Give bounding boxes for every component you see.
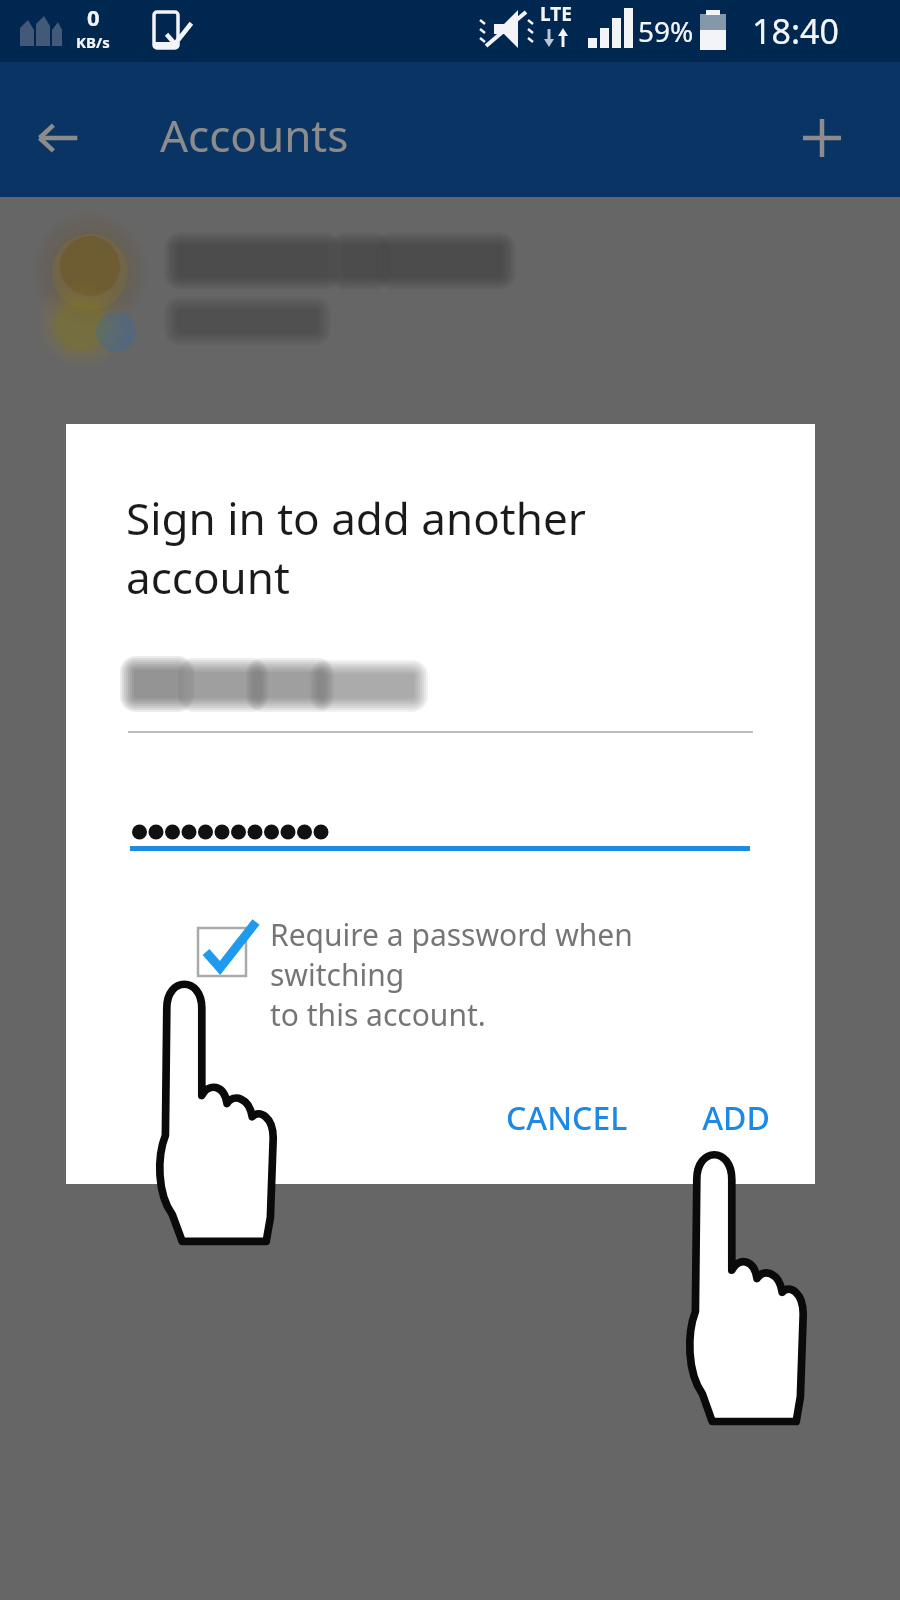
staticText: Sign in to add another account [126, 488, 746, 606]
staticText: CANCEL [506, 1096, 628, 1140]
staticText: Require a password when switching to thi… [270, 914, 766, 1035]
staticText: 18:40 [752, 8, 839, 54]
staticText: KB/s [76, 32, 110, 52]
staticText: Accounts [160, 105, 349, 165]
button[interactable]: Back [18, 98, 98, 178]
staticText: ADD [702, 1096, 770, 1140]
staticText: 0 [87, 2, 100, 32]
button[interactable]: Require a password when switching to thi… [186, 914, 766, 1035]
staticText: 59% [638, 12, 694, 50]
button[interactable]: ADD [672, 1079, 800, 1157]
button[interactable]: CANCEL [476, 1079, 658, 1157]
staticText: LTE [540, 1, 572, 27]
button[interactable]: Add account [782, 98, 862, 178]
